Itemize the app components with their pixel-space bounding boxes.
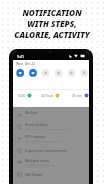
staticText: CALORIE, ACTIVITY xyxy=(14,29,90,40)
button[interactable]: Experience improvement xyxy=(13,144,89,156)
button[interactable]: Multiple users xyxy=(13,156,89,168)
staticText: WITH STEPS, xyxy=(27,18,77,29)
staticText: Reset options xyxy=(25,122,48,127)
button[interactable]: Quick setting toggle xyxy=(68,69,76,77)
button[interactable]: Reset options xyxy=(13,120,89,132)
staticText: On xyxy=(25,115,29,118)
button[interactable]: Backup xyxy=(13,108,89,120)
staticText: Edit Board xyxy=(25,172,43,177)
staticText: NOTIFICATION xyxy=(22,7,82,18)
staticText: 9:41 xyxy=(17,54,25,59)
staticText: 3250 xyxy=(18,94,26,98)
button[interactable]: Quick setting toggle xyxy=(16,69,24,77)
button[interactable]: DPS storage xyxy=(13,132,89,144)
staticText: Experience improvement xyxy=(25,148,68,153)
staticText: Signed in as Keith Barela xyxy=(25,163,54,166)
staticText: 45 min xyxy=(72,94,83,98)
staticText: Multiple users xyxy=(25,158,49,163)
staticText: Wed, Dec 22 xyxy=(16,61,36,65)
staticText: DPS storage xyxy=(25,134,46,139)
button[interactable]: Quick setting toggle xyxy=(80,69,88,77)
button[interactable]: Quick setting toggle xyxy=(55,69,63,77)
staticText: Network, apps or device can be reset xyxy=(25,127,69,130)
staticText: 420 kcal xyxy=(41,94,54,98)
button[interactable]: Edit Board xyxy=(13,168,89,180)
staticText: This function is only available in xyxy=(25,139,63,142)
button[interactable]: Quick setting toggle xyxy=(42,69,50,77)
button[interactable]: Quick setting toggle xyxy=(29,69,37,77)
staticText: Backup xyxy=(25,110,38,115)
